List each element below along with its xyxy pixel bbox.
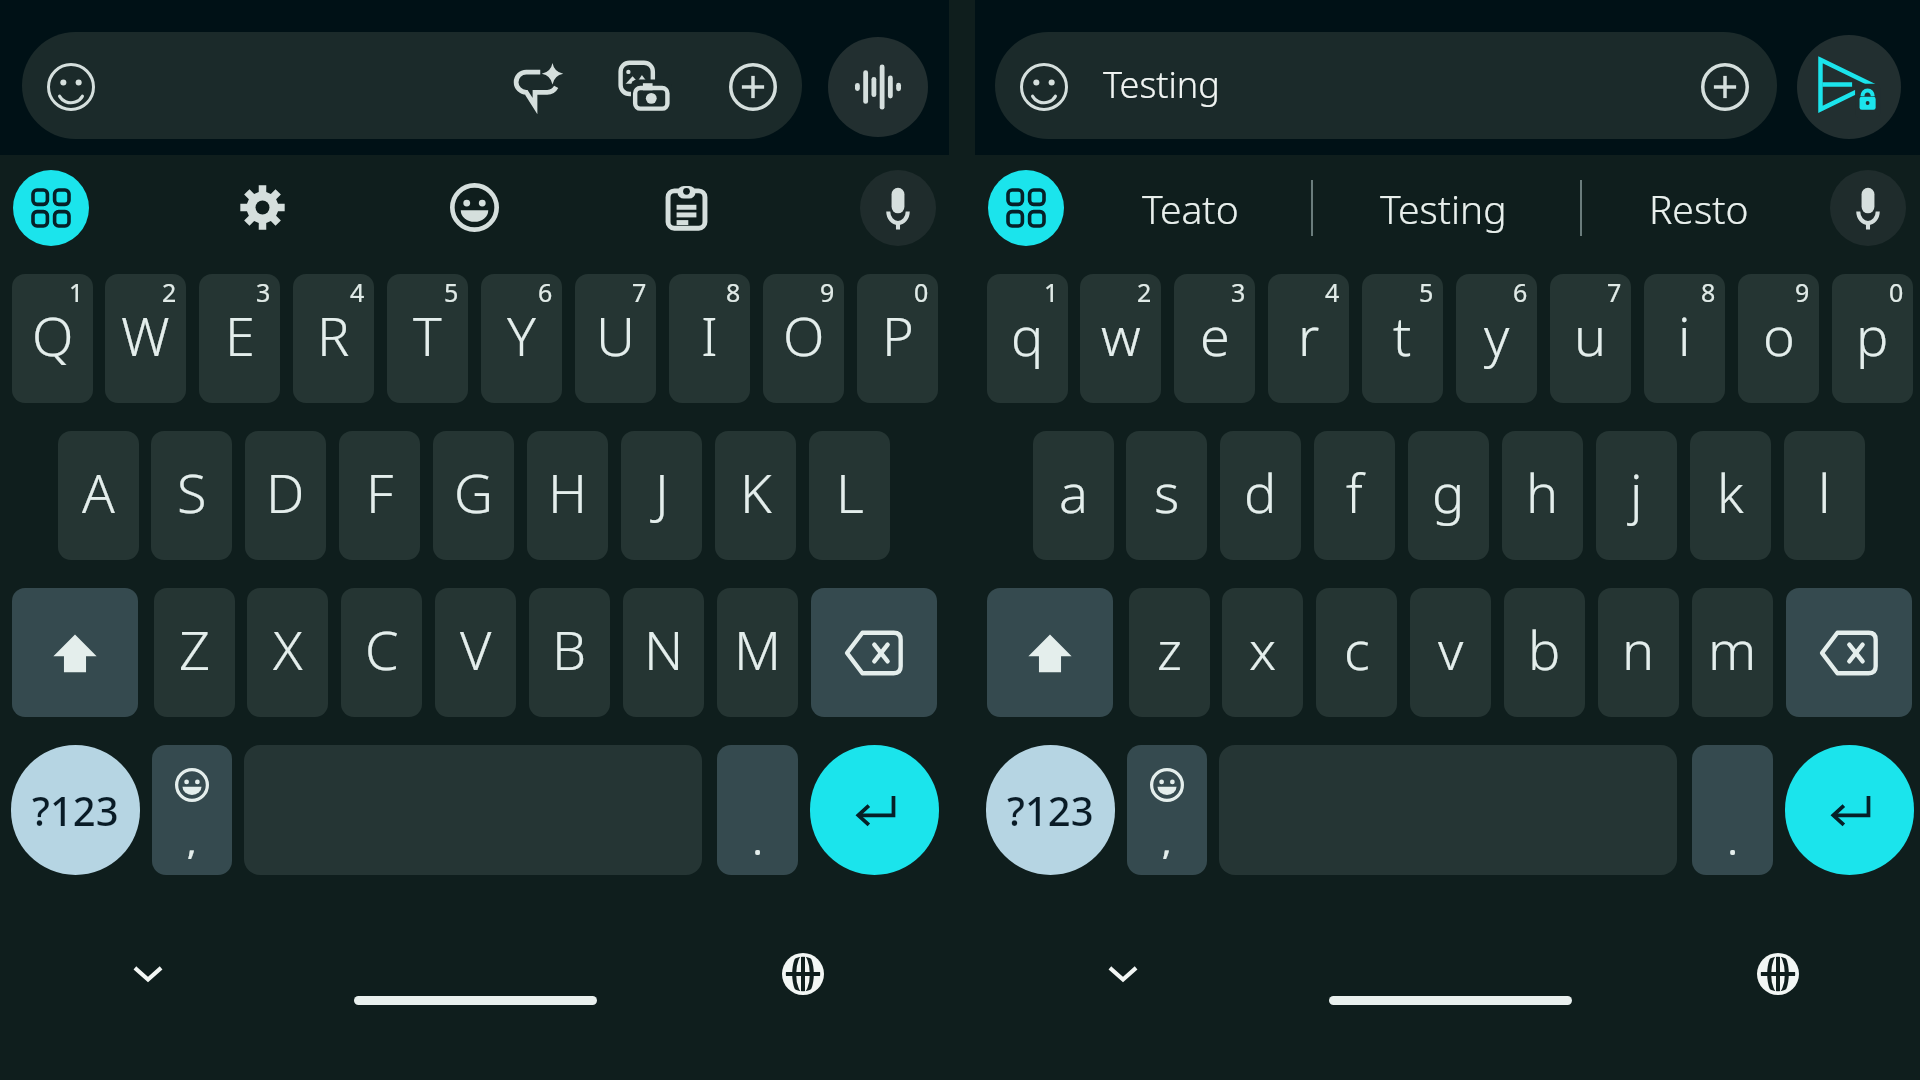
button[interactable]: Comma xyxy=(1127,745,1207,875)
button[interactable]: k xyxy=(1690,431,1771,560)
button[interactable]: j xyxy=(1596,431,1677,560)
button[interactable] xyxy=(811,588,937,717)
button[interactable]: Enter xyxy=(810,745,939,875)
button[interactable]: n xyxy=(1598,588,1679,717)
button[interactable]: D xyxy=(245,431,326,560)
button[interactable]: W xyxy=(105,274,186,403)
button[interactable]: J xyxy=(621,431,702,560)
button[interactable]: L xyxy=(809,431,890,560)
button[interactable]: Gallery xyxy=(618,60,670,114)
button[interactable] xyxy=(1786,588,1912,717)
staticText: b xyxy=(1528,612,1561,686)
button[interactable]: X xyxy=(247,588,328,717)
button[interactable]: Period xyxy=(1692,745,1773,875)
button[interactable]: P xyxy=(857,274,938,403)
button[interactable]: S xyxy=(151,431,232,560)
button[interactable]: y xyxy=(1456,274,1537,403)
button[interactable]: u xyxy=(1550,274,1631,403)
button[interactable]: m xyxy=(1692,588,1773,717)
button[interactable]: Comma xyxy=(152,745,232,875)
button[interactable]: i xyxy=(1644,274,1725,403)
button[interactable]: f xyxy=(1314,431,1395,560)
staticText: E xyxy=(225,298,255,372)
staticText: l xyxy=(1818,455,1831,529)
staticText: 9 xyxy=(820,275,835,305)
staticText: , xyxy=(187,819,197,865)
button[interactable]: Add xyxy=(729,63,777,111)
button[interactable]: r xyxy=(1268,274,1349,403)
button[interactable]: v xyxy=(1410,588,1491,717)
button[interactable]: q xyxy=(987,274,1068,403)
button[interactable]: s xyxy=(1126,431,1207,560)
button[interactable]: N xyxy=(623,588,704,717)
button[interactable]: g xyxy=(1408,431,1489,560)
button[interactable]: Voice input xyxy=(1830,170,1906,246)
button[interactable]: A xyxy=(58,431,139,560)
button[interactable]: Resto xyxy=(1579,162,1819,254)
button[interactable]: c xyxy=(1316,588,1397,717)
button[interactable]: Switch language xyxy=(782,953,824,995)
button[interactable]: F xyxy=(339,431,420,560)
button[interactable]: Send xyxy=(1797,35,1901,139)
button[interactable]: ?123 xyxy=(986,745,1115,875)
button[interactable]: x xyxy=(1222,588,1303,717)
button[interactable]: V xyxy=(435,588,516,717)
button[interactable]: Y xyxy=(481,274,562,403)
staticText: 2 xyxy=(162,275,177,305)
button[interactable]: e xyxy=(1174,274,1255,403)
button[interactable] xyxy=(995,32,1777,139)
button[interactable]: h xyxy=(1502,431,1583,560)
button[interactable]: T xyxy=(387,274,468,403)
button[interactable]: Switch language xyxy=(1757,953,1799,995)
button[interactable]: Voice input xyxy=(860,170,936,246)
button[interactable]: d xyxy=(1220,431,1301,560)
button[interactable]: Testing xyxy=(1323,162,1563,254)
button[interactable]: Emoji xyxy=(47,63,95,111)
button[interactable]: K xyxy=(715,431,796,560)
staticText: 8 xyxy=(726,275,741,305)
button[interactable]: b xyxy=(1504,588,1585,717)
button[interactable]: E xyxy=(199,274,280,403)
button[interactable]: Toolbar xyxy=(988,170,1064,246)
button[interactable]: Hide keyboard xyxy=(1106,957,1140,991)
button[interactable]: Hide keyboard xyxy=(131,957,165,991)
button[interactable]: M xyxy=(717,588,798,717)
button[interactable]: Enter xyxy=(1785,745,1914,875)
button[interactable]: Q xyxy=(12,274,93,403)
button[interactable]: C xyxy=(341,588,422,717)
button[interactable]: ?123 xyxy=(11,745,140,875)
button[interactable] xyxy=(12,588,138,717)
button[interactable]: Add xyxy=(1701,63,1749,111)
button[interactable]: z xyxy=(1129,588,1210,717)
button[interactable]: l xyxy=(1784,431,1865,560)
staticText: 1 xyxy=(69,275,84,305)
button[interactable]: Smart reply xyxy=(513,62,563,112)
button[interactable]: B xyxy=(529,588,610,717)
button[interactable]: H xyxy=(527,431,608,560)
button[interactable]: Period xyxy=(717,745,798,875)
staticText: , xyxy=(1162,819,1172,865)
button[interactable]: p xyxy=(1832,274,1913,403)
button[interactable]: Emoji xyxy=(1020,63,1068,111)
button[interactable]: O xyxy=(763,274,844,403)
button[interactable]: U xyxy=(575,274,656,403)
button[interactable]: Toolbar item xyxy=(652,173,720,241)
button[interactable]: R xyxy=(293,274,374,403)
button[interactable]: a xyxy=(1033,431,1114,560)
button[interactable]: I xyxy=(669,274,750,403)
button[interactable] xyxy=(22,32,802,139)
button[interactable]: Teato xyxy=(1070,162,1310,254)
button[interactable]: Toolbar item xyxy=(228,173,296,241)
button[interactable]: o xyxy=(1738,274,1819,403)
button[interactable]: t xyxy=(1362,274,1443,403)
button[interactable] xyxy=(987,588,1113,717)
button[interactable]: Toolbar xyxy=(13,170,89,246)
staticText: 9 xyxy=(1795,275,1810,305)
button[interactable]: Toolbar item xyxy=(440,173,508,241)
button[interactable]: w xyxy=(1080,274,1161,403)
button[interactable]: Z xyxy=(154,588,235,717)
button[interactable]: Voice message xyxy=(828,37,928,137)
button[interactable]: G xyxy=(433,431,514,560)
